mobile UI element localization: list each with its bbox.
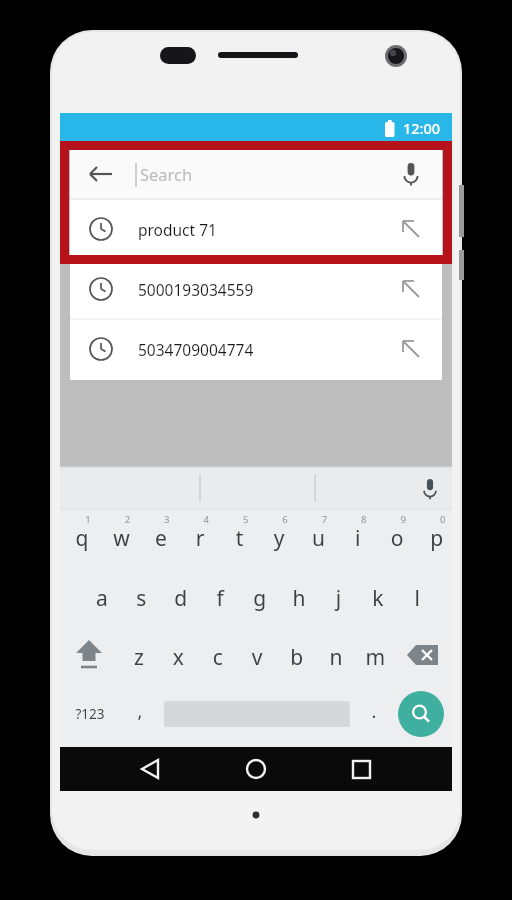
button[interactable]: Voice input [410,468,450,508]
button[interactable]: Backspace [400,632,446,678]
button[interactable]: Back [110,749,190,791]
button[interactable]: Voice search [392,152,436,196]
button[interactable]: Space [164,694,350,734]
button[interactable] [130,152,392,196]
button[interactable] [70,199,442,259]
button[interactable]: Home [216,749,296,791]
button[interactable]: Back [88,152,124,196]
button[interactable]: Shift [66,632,112,678]
button[interactable]: Recent apps [322,749,402,791]
button[interactable] [70,319,442,379]
button[interactable] [66,692,118,736]
button[interactable] [70,259,442,319]
button[interactable]: Search [398,691,444,737]
